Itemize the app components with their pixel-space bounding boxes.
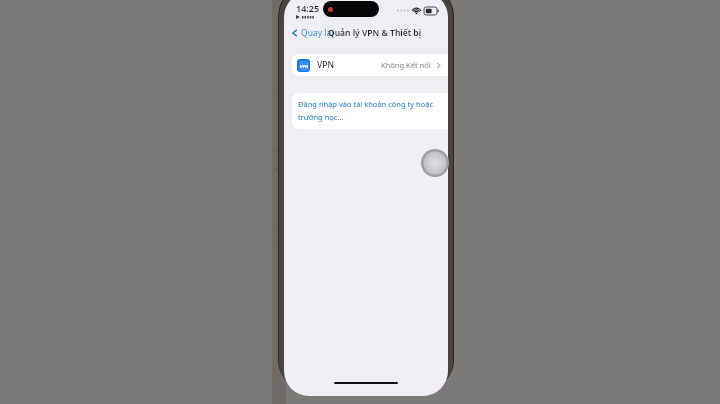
- staticText: g: [277, 243, 281, 250]
- button[interactable]: VPN: [292, 54, 448, 76]
- staticText: Đăng nhập vào tài khoản công ty hoặc: [298, 99, 433, 109]
- staticText: Quản lý VPN & Thiết bị: [328, 27, 422, 39]
- button[interactable]: Đăng nhập vào tài khoản công ty hoặc: [292, 93, 448, 129]
- staticText: Quay lại: [301, 27, 334, 39]
- button[interactable]: Quay lại: [288, 25, 337, 41]
- staticText: VPN: [317, 59, 335, 71]
- staticText: i: [277, 222, 279, 229]
- staticText: 14:25: [296, 2, 320, 14]
- staticText: ai: [276, 146, 281, 153]
- staticText: Không Kết nối: [381, 60, 431, 70]
- staticText: 2: [277, 338, 280, 345]
- staticText: n2: [277, 88, 283, 95]
- staticText: trường học...: [298, 112, 344, 122]
- staticText: hi: [276, 167, 281, 174]
- staticText: VPN: [300, 64, 309, 69]
